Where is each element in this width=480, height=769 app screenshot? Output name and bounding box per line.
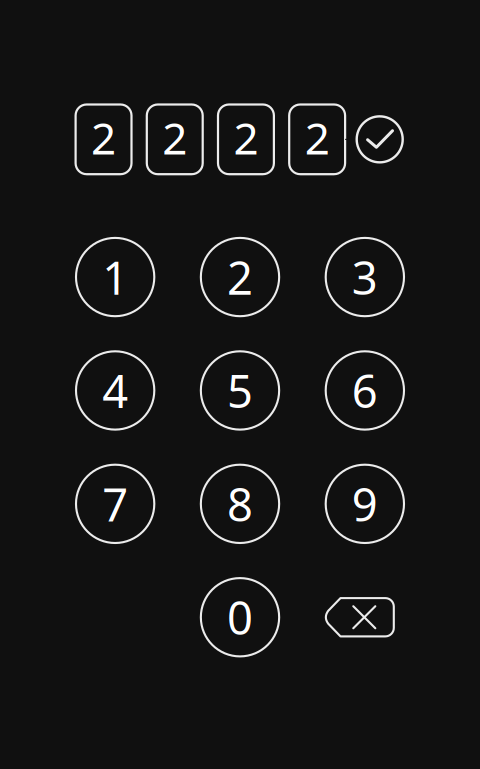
button[interactable]: 7 (76, 465, 154, 543)
button[interactable]: Delete (326, 578, 404, 656)
button[interactable]: 3 (326, 238, 404, 316)
staticText: 8 (227, 474, 253, 534)
staticText: 2 (162, 108, 187, 167)
staticText: 0 (227, 587, 253, 647)
button[interactable]: 8 (201, 465, 279, 543)
button[interactable]: 9 (326, 465, 404, 543)
staticText: 7 (102, 474, 128, 534)
staticText: 4 (102, 360, 128, 420)
staticText: 3 (352, 247, 378, 307)
button[interactable]: 4 (76, 351, 154, 430)
button[interactable]: 5 (201, 351, 279, 430)
button[interactable]: 6 (326, 351, 404, 430)
staticText: 5 (227, 360, 253, 420)
button[interactable]: 2 (201, 238, 279, 316)
staticText: 2 (227, 247, 253, 307)
staticText: 1 (102, 247, 128, 307)
button[interactable]: Confirm (357, 116, 403, 162)
staticText: 6 (352, 360, 378, 420)
staticText: 2 (91, 108, 116, 167)
staticText: 9 (352, 474, 378, 534)
button[interactable]: 1 (76, 238, 154, 316)
staticText: 2 (233, 108, 258, 167)
button[interactable]: 0 (201, 578, 279, 656)
staticText: 2 (305, 108, 330, 167)
